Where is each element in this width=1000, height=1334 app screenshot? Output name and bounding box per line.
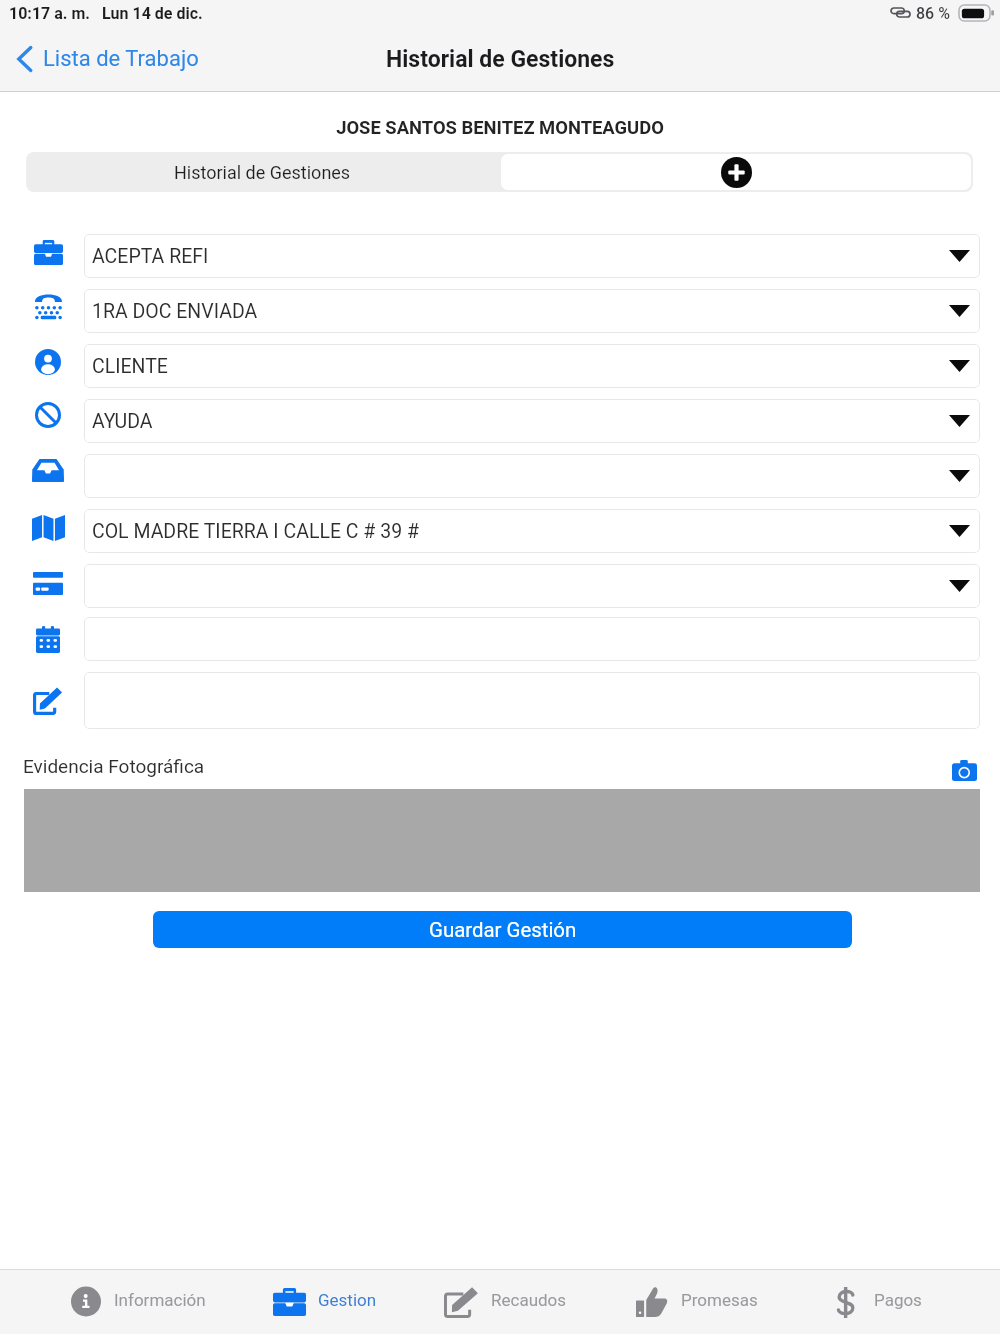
staticText: ACEPTA REFI — [92, 245, 209, 268]
button[interactable]: AYUDA — [84, 399, 980, 443]
staticText: Recaudos — [491, 1290, 567, 1310]
staticText: Lista de Trabajo — [43, 46, 199, 72]
button[interactable]: Historial de Gestiones — [26, 152, 499, 192]
staticText: Lun 14 de dic. — [102, 4, 203, 23]
staticText: 1RA DOC ENVIADA — [92, 300, 258, 323]
button[interactable] — [84, 454, 980, 498]
button[interactable]: Guardar Gestión — [153, 911, 852, 948]
staticText: 10:17 a. m. — [9, 4, 90, 23]
staticText: Historial de Gestiones — [386, 46, 615, 73]
button[interactable]: Lista de Trabajo — [0, 37, 209, 81]
staticText: Guardar Gestión — [429, 918, 577, 942]
staticText: Información — [114, 1290, 206, 1310]
button[interactable]: CLIENTE — [84, 344, 980, 388]
button[interactable] — [84, 564, 980, 608]
button[interactable] — [84, 672, 980, 729]
button[interactable]: COL MADRE TIERRA I CALLE C # 39 # — [84, 509, 980, 553]
button[interactable]: ACEPTA REFI — [84, 234, 980, 278]
staticText: JOSE SANTOS BENITEZ MONTEAGUDO — [0, 117, 1000, 139]
button[interactable]: Tomar fotografia — [947, 754, 984, 788]
staticText: Pagos — [874, 1290, 922, 1310]
staticText: CLIENTE — [92, 355, 168, 378]
staticText: Historial de Gestiones — [174, 162, 351, 183]
button[interactable]: Gestion — [251, 1271, 411, 1333]
staticText: 86 % — [916, 4, 950, 23]
staticText: Promesas — [681, 1290, 758, 1310]
button[interactable]: Pagos — [815, 1271, 960, 1333]
staticText: COL MADRE TIERRA I CALLE C # 39 # — [92, 520, 419, 543]
button[interactable]: Información — [49, 1271, 353, 1333]
staticText: Gestion — [318, 1290, 377, 1310]
button[interactable]: 1RA DOC ENVIADA — [84, 289, 980, 333]
staticText: AYUDA — [92, 410, 153, 433]
staticText: Evidencia Fotográfica — [23, 755, 205, 777]
button[interactable]: Agregar gestion — [501, 154, 971, 190]
button[interactable]: Recaudos — [422, 1271, 587, 1333]
button[interactable] — [84, 617, 980, 661]
button[interactable]: Promesas — [614, 1271, 794, 1333]
